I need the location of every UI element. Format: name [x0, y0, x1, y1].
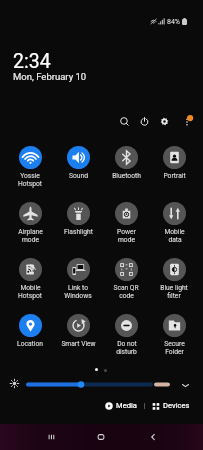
staticText: Devices	[163, 401, 190, 410]
button[interactable]: Sound	[54, 146, 102, 188]
button[interactable]: Portrait	[150, 146, 198, 188]
staticText: 2:34	[13, 50, 51, 73]
staticText: filter	[167, 292, 181, 300]
button[interactable]: Search	[115, 112, 134, 131]
button[interactable]: Expand	[179, 379, 192, 392]
staticText: Portrait	[163, 172, 186, 180]
staticText: code	[119, 292, 134, 300]
staticText: Power	[117, 228, 136, 236]
staticText: Hotspot	[18, 292, 42, 300]
staticText: Media	[116, 401, 137, 410]
button[interactable]: Flashlight	[54, 202, 102, 244]
staticText: mode	[118, 236, 135, 244]
staticText: Mobile	[20, 284, 41, 292]
button[interactable]: Link to	[54, 258, 102, 300]
staticText: Windows	[64, 292, 92, 300]
button[interactable]: Power off	[135, 112, 154, 131]
button[interactable]: Settings	[155, 112, 174, 131]
staticText: Do not	[117, 340, 137, 348]
button[interactable]: Location	[6, 314, 54, 356]
staticText: Yossie	[20, 172, 40, 180]
staticText: Mobile	[164, 228, 185, 236]
button[interactable]: More options	[177, 112, 196, 131]
button[interactable]: Mobile	[150, 202, 198, 244]
staticText: Bluetooth	[112, 172, 141, 180]
button[interactable]: Smart View	[54, 314, 102, 356]
staticText: disturb	[116, 348, 137, 356]
button[interactable]: Airplane	[6, 202, 54, 244]
button[interactable]: Recent apps	[41, 427, 61, 447]
button[interactable]: Scan QR	[102, 258, 150, 300]
button[interactable]: Back	[143, 427, 163, 447]
button[interactable]: Blue light	[150, 258, 198, 300]
button[interactable]	[26, 376, 170, 392]
button[interactable]: Media	[103, 401, 139, 410]
button[interactable]: Devices	[150, 401, 192, 410]
button[interactable]: Mobile	[6, 258, 54, 300]
staticText: Scan QR	[113, 284, 139, 292]
staticText: data	[168, 236, 182, 244]
staticText: Smart View	[61, 340, 96, 348]
button[interactable]: Power	[102, 202, 150, 244]
staticText: Secure	[164, 340, 185, 348]
staticText: mode	[22, 236, 39, 244]
staticText: Mon, February 10	[13, 71, 87, 82]
button[interactable]: Secure	[150, 314, 198, 356]
button[interactable]: Bluetooth	[102, 146, 150, 188]
staticText: Blue light	[160, 284, 188, 292]
staticText: Folder	[165, 348, 184, 356]
button[interactable]: Yossie	[6, 146, 54, 188]
staticText: Airplane	[18, 228, 43, 236]
staticText: 84%	[167, 18, 180, 26]
staticText: Location	[17, 340, 43, 348]
staticText: Flashlight	[64, 228, 93, 236]
staticText: Sound	[69, 172, 88, 180]
button[interactable]: Home	[91, 427, 111, 447]
staticText: Link to	[68, 284, 88, 292]
button[interactable]: Do not	[102, 314, 150, 356]
staticText: Hotspot	[18, 180, 42, 188]
